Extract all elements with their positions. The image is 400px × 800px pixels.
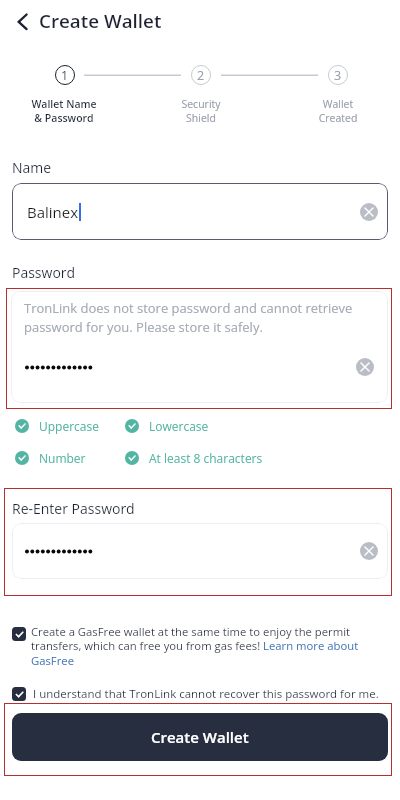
staticText: Create Wallet [151,727,249,747]
staticText: Lowercase [149,418,209,434]
staticText: Uppercase [39,418,99,434]
button[interactable]: Uppercase [15,418,99,434]
button[interactable]: At least 8 characters [125,450,263,466]
button[interactable]: Number [15,450,86,466]
staticText: Wallet Created [278,97,398,125]
staticText: Security Shield [141,97,261,125]
button[interactable]: Back [6,6,36,36]
staticText: 3 [334,67,342,84]
button[interactable]: Balinex [12,183,388,240]
button[interactable]: Clear [360,542,378,560]
button[interactable]: Clear [360,203,378,221]
staticText: I understand that TronLink cannot recove… [33,686,379,702]
staticText: Create a GasFree wallet at the same time… [31,624,386,669]
staticText: Create Wallet [39,8,162,34]
staticText: TronLink does not store password and can… [24,299,364,336]
staticText: 1 [61,67,69,84]
button[interactable]: I understand that TronLink cannot recove… [12,686,386,702]
staticText: Re-Enter Password [12,499,135,518]
staticText: Name [12,158,52,177]
staticText: At least 8 characters [149,450,263,466]
staticText: Wallet Name & Password [4,97,124,125]
button[interactable]: Clear [12,523,388,579]
staticText: 2 [197,67,205,84]
staticText: Password [12,263,76,282]
button[interactable]: TronLink does not store password and can… [11,291,388,403]
staticText: Number [39,450,86,466]
staticText: Balinex [27,202,79,222]
button[interactable]: Create Wallet [12,713,388,761]
button[interactable]: Clear [356,358,374,376]
button[interactable]: Create a GasFree wallet at the same time… [12,624,386,669]
button[interactable]: Lowercase [125,418,209,434]
